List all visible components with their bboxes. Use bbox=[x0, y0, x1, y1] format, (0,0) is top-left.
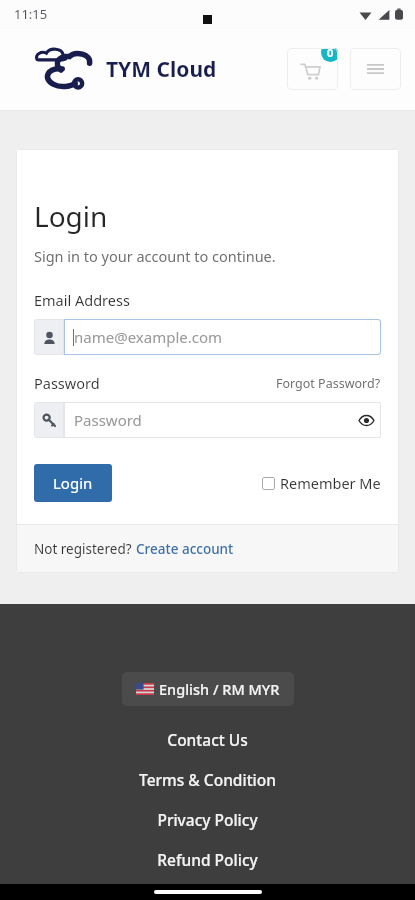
button[interactable]: Terms & Condition bbox=[0, 769, 415, 790]
staticText: Sign in to your account to continue. bbox=[34, 246, 276, 266]
staticText: Refund Policy bbox=[157, 849, 258, 870]
staticText: Password bbox=[34, 373, 100, 393]
button[interactable]: Create account bbox=[136, 540, 234, 558]
button[interactable]: Contact Us bbox=[0, 729, 415, 750]
button[interactable]: Password bbox=[64, 402, 381, 438]
staticText: Contact Us bbox=[167, 729, 248, 750]
staticText: Not registered? bbox=[34, 540, 136, 558]
button[interactable]: name@example.com bbox=[64, 319, 381, 355]
button[interactable]: Remember Me bbox=[262, 473, 381, 493]
staticText: Forgot Password? bbox=[276, 375, 381, 392]
staticText: Remember Me bbox=[280, 473, 381, 493]
staticText: name@example.com bbox=[74, 327, 223, 347]
staticText: Login bbox=[53, 473, 93, 493]
staticText: Password bbox=[74, 410, 142, 430]
staticText: Login bbox=[34, 197, 108, 235]
staticText: 0 bbox=[327, 48, 334, 60]
staticText: TYM Cloud bbox=[106, 55, 217, 84]
button[interactable]: Menu bbox=[350, 48, 401, 90]
button[interactable]: Forgot Password? bbox=[276, 375, 381, 392]
button[interactable]: Cart bbox=[287, 48, 338, 90]
button[interactable]: Refund Policy bbox=[0, 849, 415, 870]
staticText: English / RM MYR bbox=[159, 679, 280, 699]
button[interactable]: Login bbox=[34, 464, 112, 502]
staticText: Email Address bbox=[34, 290, 130, 310]
button[interactable]: English / RM MYR bbox=[122, 672, 294, 706]
button[interactable]: Privacy Policy bbox=[0, 809, 415, 830]
staticText: Privacy Policy bbox=[157, 809, 258, 830]
staticText: Create account bbox=[136, 540, 234, 558]
staticText: Terms & Condition bbox=[139, 769, 276, 790]
button[interactable]: Show password bbox=[351, 405, 381, 435]
staticText: 11:15 bbox=[14, 5, 48, 23]
